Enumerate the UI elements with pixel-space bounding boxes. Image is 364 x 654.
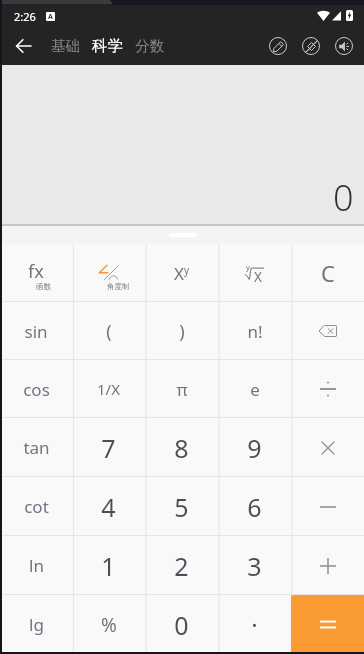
button[interactable]: tan — [0, 418, 72, 477]
staticText: X — [254, 268, 262, 286]
staticText: sin — [24, 320, 48, 343]
staticText: 3 — [247, 549, 262, 583]
button[interactable]: ( — [72, 302, 145, 360]
staticText: 0 — [174, 608, 189, 642]
staticText: 7 — [101, 431, 116, 465]
staticText: ( — [106, 319, 112, 344]
staticText: y — [246, 262, 250, 272]
staticText: 4 — [101, 490, 116, 524]
button[interactable]: 4 — [72, 477, 145, 536]
staticText: 2 — [174, 549, 189, 583]
staticText: n! — [247, 320, 263, 343]
button[interactable]: Divide — [291, 360, 364, 418]
button[interactable]: 分数 — [129, 31, 170, 61]
staticText: · — [251, 608, 258, 641]
staticText: 2:26 — [14, 9, 36, 24]
button[interactable]: 0 — [145, 595, 218, 654]
button[interactable]: 1/X — [72, 360, 145, 418]
button[interactable]: C — [291, 244, 364, 302]
button[interactable]: y-th root — [218, 244, 291, 302]
staticText: y — [184, 263, 190, 277]
staticText: 0 — [333, 173, 354, 222]
button[interactable]: x to the power y — [145, 244, 218, 302]
staticText: 5 — [174, 490, 189, 524]
button[interactable]: n factorial — [218, 302, 291, 360]
staticText: C — [321, 258, 335, 288]
button[interactable]: 3 — [218, 536, 291, 595]
button[interactable]: 1 — [72, 536, 145, 595]
staticText: lg — [29, 613, 44, 636]
button[interactable]: 9 — [218, 418, 291, 477]
button[interactable]: Edit — [261, 26, 294, 65]
staticText: cos — [23, 378, 50, 401]
staticText: 6 — [247, 490, 262, 524]
staticText: X — [174, 262, 184, 285]
staticText: ln — [29, 554, 44, 577]
button[interactable]: 基础 — [45, 31, 86, 61]
staticText: 1 — [101, 549, 116, 583]
staticText: 科学 — [92, 36, 123, 56]
button[interactable]: Backspace — [291, 302, 364, 360]
button[interactable]: Hide history — [294, 26, 327, 65]
button[interactable]: 科学 — [86, 30, 129, 62]
button[interactable]: 5 — [145, 477, 218, 536]
staticText: tan — [23, 436, 50, 459]
staticText: 角度制 — [107, 282, 130, 291]
button[interactable]: cos — [0, 360, 72, 418]
staticText: 基础 — [51, 37, 80, 55]
staticText: cot — [24, 495, 49, 518]
staticText: A — [48, 12, 53, 21]
button[interactable]: lg — [0, 595, 72, 654]
staticText: ) — [179, 319, 185, 344]
button[interactable]: 8 — [145, 418, 218, 477]
button[interactable]: Decimal point — [218, 595, 291, 654]
staticText: 1/X — [97, 379, 120, 399]
button[interactable]: sin — [0, 302, 72, 360]
staticText: 分数 — [135, 37, 164, 55]
button[interactable]: Back — [0, 26, 46, 65]
staticText: e — [250, 378, 260, 401]
button[interactable]: Percent — [72, 595, 145, 654]
staticText: 函数 — [36, 282, 51, 291]
button[interactable]: 2 — [145, 536, 218, 595]
button[interactable]: Equals — [291, 595, 364, 654]
button[interactable]: 7 — [72, 418, 145, 477]
button[interactable]: ) — [145, 302, 218, 360]
button[interactable]: cot — [0, 477, 72, 536]
staticText: % — [101, 612, 117, 638]
button[interactable]: pi — [145, 360, 218, 418]
button[interactable]: Angle unit — [72, 244, 145, 302]
button[interactable]: Sound — [327, 26, 360, 65]
button[interactable]: Minus — [291, 477, 364, 536]
button[interactable]: fx — [0, 244, 72, 302]
button[interactable]: e — [218, 360, 291, 418]
staticText: fx — [28, 259, 44, 284]
button[interactable]: ln — [0, 536, 72, 595]
button[interactable]: Plus — [291, 536, 364, 595]
staticText: π — [176, 378, 188, 401]
staticText: 9 — [247, 431, 262, 465]
button[interactable]: 6 — [218, 477, 291, 536]
button[interactable]: Multiply — [291, 418, 364, 477]
staticText: 8 — [174, 431, 189, 465]
